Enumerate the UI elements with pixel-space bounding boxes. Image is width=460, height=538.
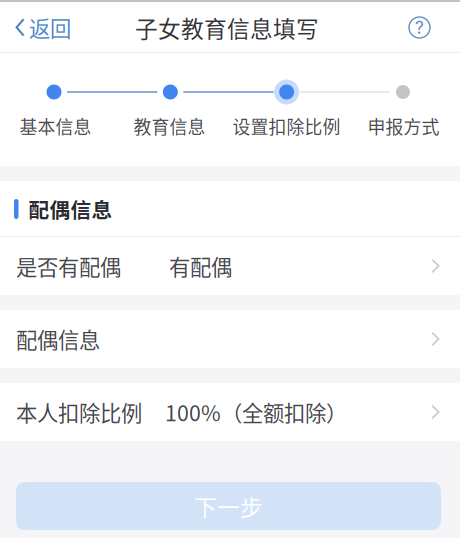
staticText: 子女教育信息填写	[135, 11, 319, 44]
staticText: 本人扣除比例	[16, 397, 142, 427]
staticText: 申报方式	[367, 113, 439, 139]
button[interactable]: 返回	[0, 2, 79, 53]
staticText: 下一步	[194, 490, 263, 522]
staticText: 配偶信息	[28, 194, 112, 224]
button[interactable]: 下一步	[16, 482, 441, 530]
staticText: ?	[415, 17, 424, 38]
staticText: 配偶信息	[16, 324, 100, 354]
staticText: 基本信息	[19, 113, 91, 139]
button[interactable]: 帮助	[394, 2, 460, 53]
staticText: 100%（全额扣除）	[165, 397, 347, 427]
staticText: 返回	[29, 12, 71, 43]
staticText: 是否有配偶	[16, 251, 121, 281]
staticText: 设置扣除比例	[232, 113, 340, 139]
button[interactable]: 配偶信息	[0, 310, 460, 368]
button[interactable]: 是否有配偶	[0, 237, 460, 295]
staticText: 有配偶	[169, 251, 232, 281]
button[interactable]: 本人扣除比例	[0, 383, 460, 441]
staticText: 教育信息	[133, 113, 205, 139]
